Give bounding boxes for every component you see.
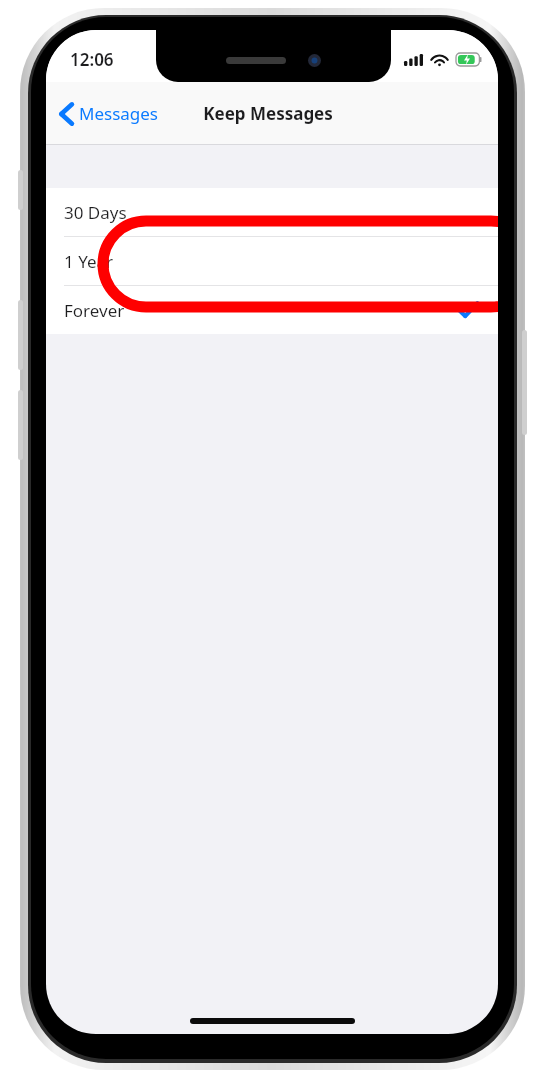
- button[interactable]: 1 Year: [46, 237, 498, 285]
- staticText: Keep Messages: [203, 102, 333, 125]
- staticText: Forever: [64, 299, 125, 322]
- staticText: Messages: [79, 102, 159, 125]
- button[interactable]: Forever: [46, 286, 498, 334]
- staticText: 30 Days: [64, 201, 127, 224]
- button[interactable]: Messages: [46, 94, 173, 133]
- staticText: 1 Year: [64, 250, 114, 273]
- staticText: 12:06: [70, 48, 114, 71]
- button[interactable]: 30 Days: [46, 188, 498, 236]
- other: Selected: [458, 302, 478, 318]
